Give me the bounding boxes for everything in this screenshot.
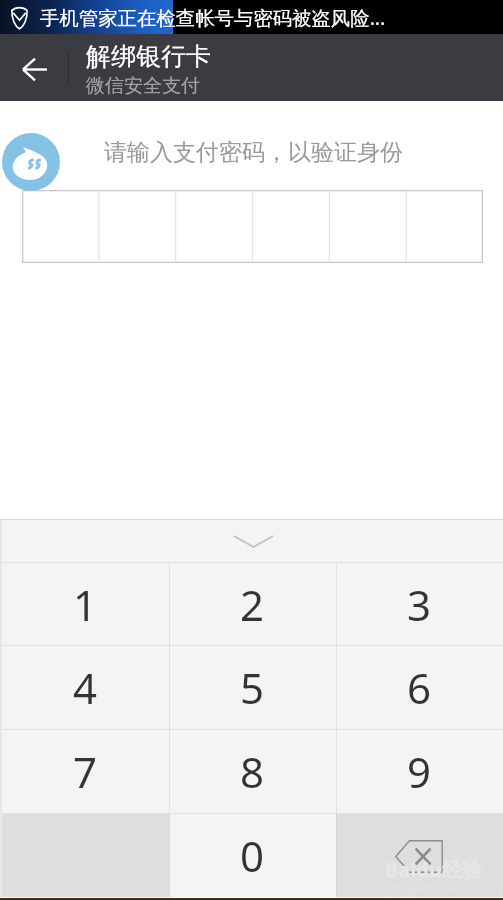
staticText: Baidu经验: [385, 856, 482, 883]
button[interactable]: 1: [2, 563, 169, 645]
staticText: 2: [240, 576, 265, 633]
staticText: 微信安全支付: [86, 74, 200, 98]
button[interactable]: 4: [2, 646, 169, 729]
staticText: 5: [240, 659, 265, 716]
staticText: 0: [240, 827, 265, 884]
staticText: 解绑银行卡: [86, 41, 211, 72]
staticText: 手机管家正在检查帐号与密码被盗风险...: [40, 4, 386, 30]
button[interactable]: 5: [169, 646, 336, 729]
button[interactable]: Back: [0, 34, 68, 101]
button[interactable]: 8: [169, 730, 336, 813]
staticText: 3: [407, 576, 432, 633]
staticText: 8: [240, 743, 265, 800]
button[interactable]: 2: [169, 563, 336, 645]
staticText: 9: [407, 743, 432, 800]
staticText: 6: [407, 659, 432, 716]
staticText: 请输入支付密码，以验证身份: [104, 138, 403, 167]
staticText: 4: [73, 659, 98, 716]
staticText: 1: [73, 576, 98, 633]
button[interactable]: 3: [336, 563, 503, 645]
staticText: 7: [73, 743, 98, 800]
button[interactable]: Delete: [336, 814, 503, 897]
button[interactable]: 7: [2, 730, 169, 813]
button[interactable]: 6: [336, 646, 503, 729]
button[interactable]: 9: [336, 730, 503, 813]
button[interactable]: 0: [169, 814, 336, 897]
